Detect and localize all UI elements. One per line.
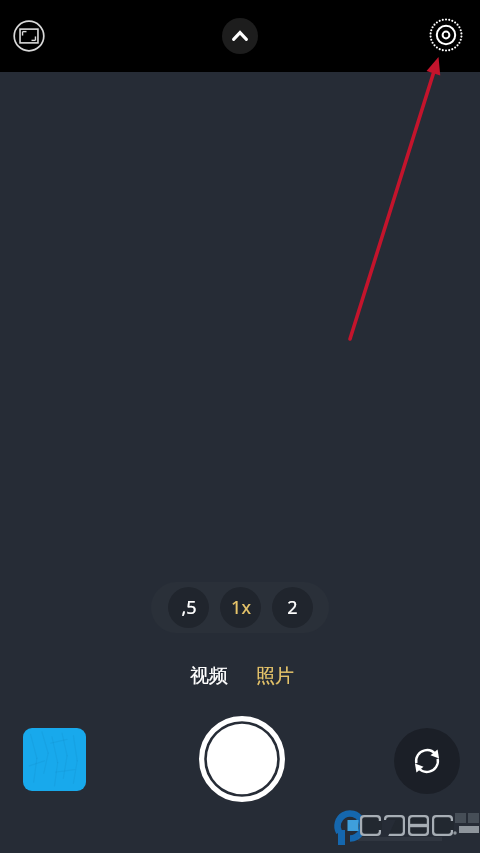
button[interactable]: Settings xyxy=(424,13,468,57)
staticText: 照片 xyxy=(256,664,294,688)
button[interactable]: Gallery xyxy=(23,728,86,791)
button[interactable]: 照片 xyxy=(248,660,302,692)
button[interactable]: Aspect ratio xyxy=(7,14,51,58)
button[interactable]: 视频 xyxy=(182,660,236,692)
button[interactable]: Expand options xyxy=(222,18,258,54)
button[interactable]: ,5 xyxy=(168,587,209,628)
staticText: 1x xyxy=(231,595,251,620)
button[interactable]: 1x xyxy=(220,587,261,628)
button[interactable]: Take photo xyxy=(199,716,285,802)
button[interactable]: Switch camera xyxy=(394,728,460,794)
staticText: ,5 xyxy=(181,595,197,620)
staticText: 2 xyxy=(287,595,298,620)
button[interactable]: 2 xyxy=(272,587,313,628)
staticText: 视频 xyxy=(190,664,228,688)
